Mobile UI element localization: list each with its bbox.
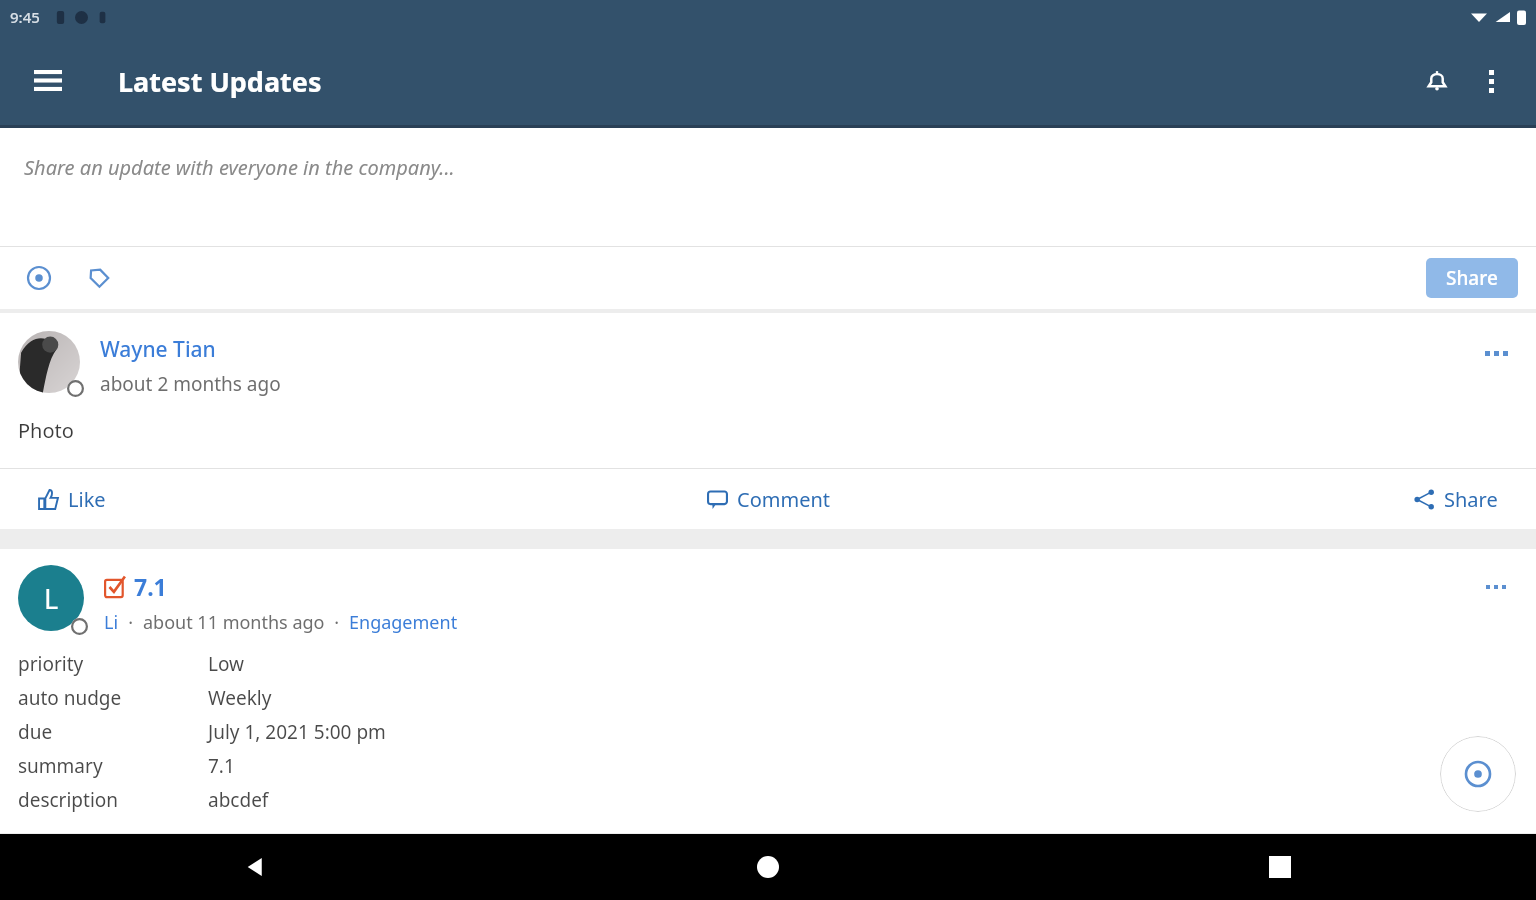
staticText: description xyxy=(18,787,208,813)
button[interactable]: Mention xyxy=(18,257,60,299)
staticText: Li xyxy=(104,610,119,635)
button[interactable]: Home xyxy=(512,834,1024,900)
button[interactable]: Wayne Tian avatar xyxy=(18,331,80,393)
button[interactable]: Recent apps xyxy=(1024,834,1536,900)
staticText: summary xyxy=(18,753,208,779)
staticText: Share xyxy=(1446,265,1498,291)
staticText: Low xyxy=(208,651,245,677)
staticText: · xyxy=(325,610,349,635)
button[interactable]: Tag xyxy=(78,257,120,299)
staticText: Like xyxy=(68,486,106,513)
button[interactable]: Share xyxy=(1426,258,1518,298)
staticText: auto nudge xyxy=(18,685,208,711)
staticText: L xyxy=(44,580,59,617)
staticText: Latest Updates xyxy=(118,63,322,100)
staticText: abcdef xyxy=(208,787,269,813)
staticText: Weekly xyxy=(208,685,272,711)
staticText: Share xyxy=(1444,486,1498,513)
staticText: due xyxy=(18,719,208,745)
staticText: 7.1 xyxy=(208,753,235,779)
staticText: July 1, 2021 5:00 pm xyxy=(208,719,386,745)
button[interactable]: Post options xyxy=(1474,331,1518,375)
button[interactable]: Task options xyxy=(1474,565,1518,609)
button[interactable]: More options xyxy=(1464,54,1518,108)
staticText: Engagement xyxy=(349,610,458,635)
button[interactable]: 7.1 xyxy=(134,571,167,602)
button[interactable]: Comment xyxy=(512,469,1024,529)
staticText: about 11 months ago xyxy=(143,610,325,635)
staticText: · xyxy=(119,610,143,635)
button[interactable]: Back xyxy=(0,834,512,900)
staticText: Photo xyxy=(18,417,74,444)
button[interactable]: Notifications xyxy=(1410,54,1464,108)
button[interactable]: Compose xyxy=(1440,736,1516,812)
button[interactable]: Share an update with everyone in the com… xyxy=(0,128,1536,246)
staticText: Share an update with everyone in the com… xyxy=(24,154,455,181)
staticText: Comment xyxy=(737,486,830,513)
staticText: 9:45 xyxy=(10,7,40,27)
button[interactable]: Li avatar xyxy=(18,565,84,631)
button[interactable]: Like xyxy=(0,469,512,529)
button[interactable]: Share xyxy=(1024,469,1536,529)
button[interactable]: Menu xyxy=(24,57,72,105)
button[interactable]: Wayne Tian xyxy=(100,335,216,364)
staticText: about 2 months ago xyxy=(100,371,281,397)
staticText: priority xyxy=(18,651,208,677)
